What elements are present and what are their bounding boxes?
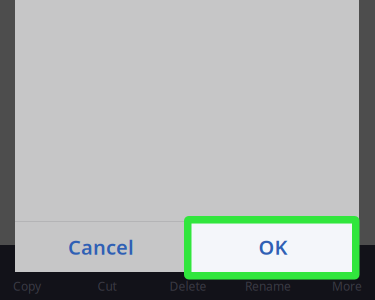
staticText: Rename	[245, 278, 291, 294]
button[interactable]: OK	[187, 222, 359, 272]
staticText: Cut	[97, 278, 116, 294]
staticText: Copy	[13, 278, 41, 294]
button[interactable]: Cut	[68, 272, 146, 300]
staticText: More	[332, 278, 362, 294]
button[interactable]: Delete	[149, 272, 227, 300]
button[interactable]: More	[308, 272, 375, 300]
staticText: Delete	[169, 278, 206, 294]
staticText: Cancel	[68, 234, 134, 260]
button[interactable]: Cancel	[15, 222, 187, 272]
staticText: OK	[258, 234, 287, 260]
button[interactable]: Rename	[229, 272, 307, 300]
button[interactable]: Copy	[0, 272, 66, 300]
